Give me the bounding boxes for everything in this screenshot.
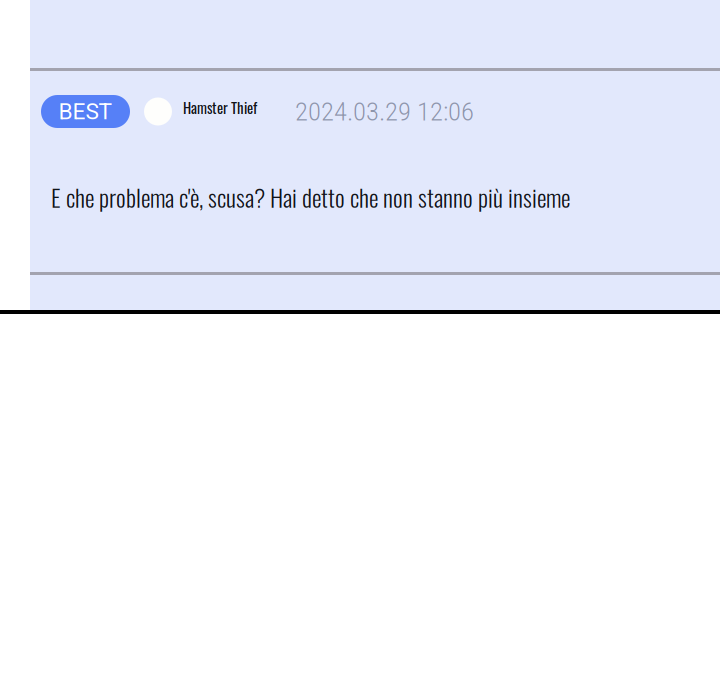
staticText: E che problema c'è, scusa? Hai detto che…: [51, 179, 570, 215]
button[interactable]: BEST: [30, 71, 720, 272]
staticText: 2024.03.29 12:06: [295, 96, 474, 127]
staticText: Hamster Thief: [183, 96, 257, 118]
staticText: BEST: [58, 98, 112, 125]
